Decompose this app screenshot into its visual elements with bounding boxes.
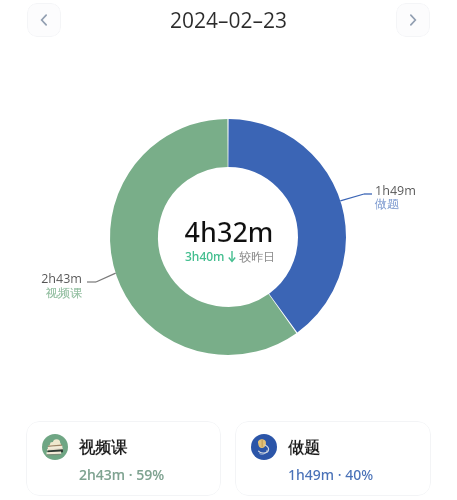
staticText: 较昨日 <box>239 249 275 264</box>
staticText: 2h43m · 59% <box>79 465 165 484</box>
staticText: 3h40m <box>185 248 225 264</box>
staticText: 视频课 <box>0 285 82 300</box>
staticText: 1h49m <box>375 182 416 199</box>
staticText: 做题 <box>375 196 399 211</box>
staticText: 1h49m · 40% <box>288 465 374 484</box>
button[interactable]: Next day <box>396 3 430 37</box>
button[interactable]: 视频课 <box>26 421 221 496</box>
staticText: 视频课 <box>79 438 127 458</box>
button[interactable]: 做题 <box>235 421 431 496</box>
staticText: 2024–02–23 <box>170 6 288 35</box>
staticText: 2h43m <box>0 270 82 287</box>
button[interactable]: Previous day <box>27 3 61 37</box>
staticText: 做题 <box>288 438 320 458</box>
staticText: 4h32m <box>129 213 329 250</box>
